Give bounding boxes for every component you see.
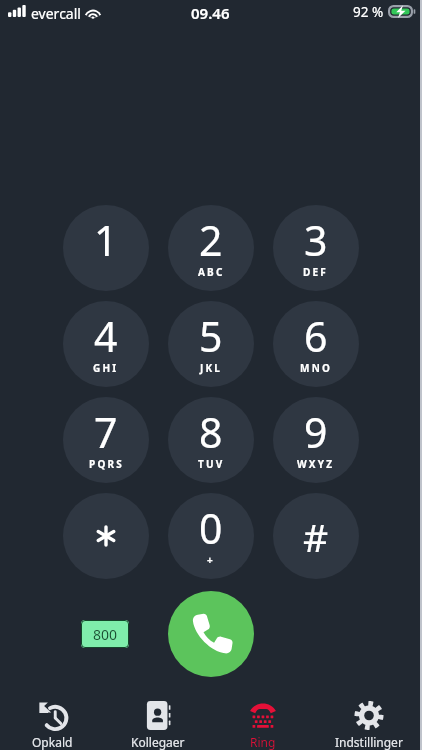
staticText: JKL: [200, 361, 223, 375]
button[interactable]: [63, 493, 149, 579]
staticText: 09.46: [191, 3, 230, 23]
staticText: 8: [199, 404, 223, 460]
staticText: #: [303, 510, 329, 563]
button[interactable]: Ring: [210, 696, 316, 750]
staticText: 7: [94, 404, 118, 460]
staticText: 9: [304, 404, 328, 460]
staticText: Kollegaer: [131, 734, 185, 750]
staticText: 92 %: [353, 3, 384, 21]
button[interactable]: Call: [168, 591, 254, 677]
button[interactable]: 2: [168, 205, 254, 291]
button[interactable]: 800: [81, 620, 129, 648]
staticText: Opkald: [32, 734, 73, 750]
staticText: 1: [94, 212, 118, 268]
staticText: 0: [199, 500, 223, 556]
staticText: 5: [199, 308, 223, 364]
button[interactable]: 1: [63, 205, 149, 291]
staticText: 800: [93, 625, 118, 644]
staticText: 2: [199, 212, 223, 268]
button[interactable]: 9: [273, 397, 359, 483]
button[interactable]: 4: [63, 301, 149, 387]
staticText: 6: [304, 308, 328, 364]
staticText: TUV: [198, 457, 225, 471]
staticText: GHI: [93, 361, 119, 375]
staticText: evercall: [31, 4, 81, 23]
button[interactable]: #: [273, 493, 359, 579]
staticText: WXYZ: [297, 457, 335, 471]
staticText: Indstillinger: [335, 734, 403, 750]
button[interactable]: Kollegaer: [105, 696, 210, 750]
staticText: PQRS: [89, 457, 124, 471]
staticText: 4: [94, 308, 118, 364]
button[interactable]: 7: [63, 397, 149, 483]
staticText: DEF: [303, 265, 329, 279]
staticText: +: [207, 553, 215, 567]
button[interactable]: Opkald: [0, 696, 105, 750]
button[interactable]: 5: [168, 301, 254, 387]
button[interactable]: 0: [168, 493, 254, 579]
staticText: ABC: [198, 265, 225, 279]
button[interactable]: Indstillinger: [316, 696, 422, 750]
staticText: 3: [304, 212, 328, 268]
staticText: Ring: [250, 734, 276, 750]
button[interactable]: 3: [273, 205, 359, 291]
button[interactable]: 8: [168, 397, 254, 483]
staticText: MNO: [300, 361, 333, 375]
button[interactable]: 6: [273, 301, 359, 387]
